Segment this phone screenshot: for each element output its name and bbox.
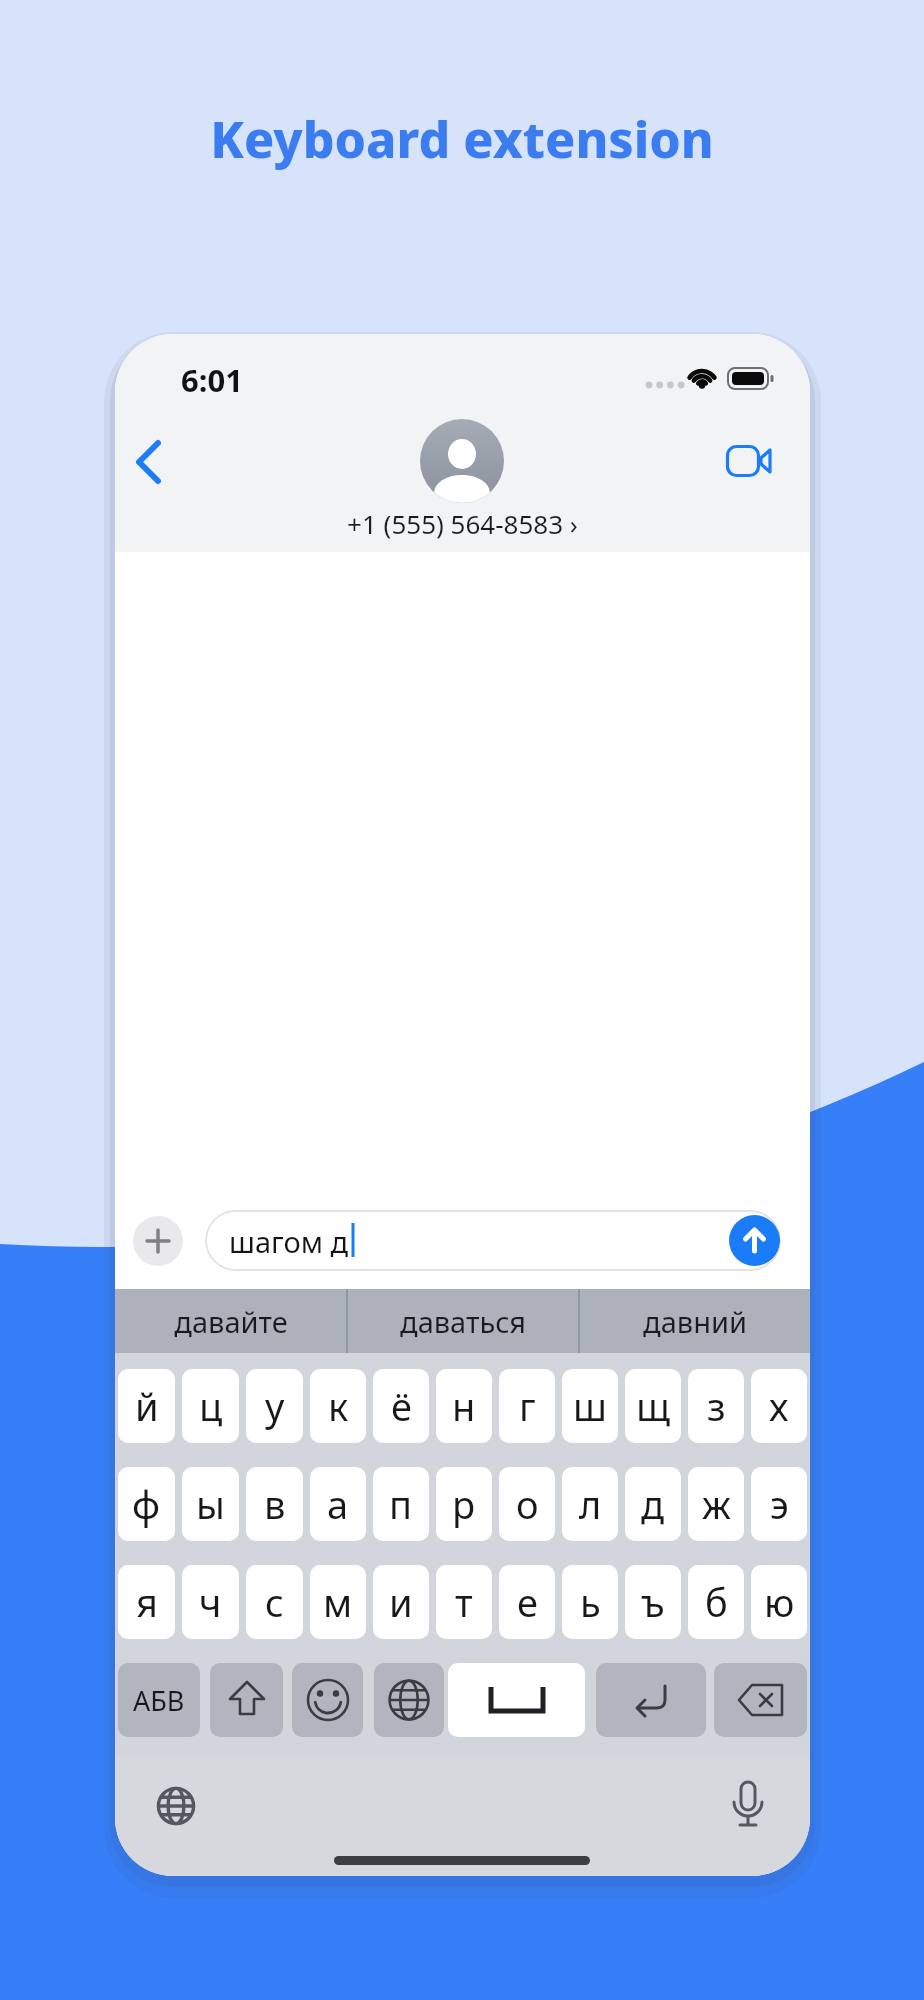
staticText: давайте	[174, 1302, 288, 1341]
staticText: в	[264, 1478, 286, 1530]
staticText: ю	[764, 1576, 795, 1628]
button[interactable]	[210, 1663, 283, 1737]
button[interactable]	[133, 439, 167, 485]
button[interactable]: ш	[562, 1369, 618, 1443]
button[interactable]: з	[688, 1369, 744, 1443]
button[interactable]	[726, 445, 776, 479]
button[interactable]	[596, 1663, 706, 1737]
staticText: ё	[391, 1380, 412, 1432]
button[interactable]	[374, 1663, 444, 1737]
button[interactable]: г	[499, 1369, 555, 1443]
staticText: с	[265, 1576, 284, 1628]
staticText: даваться	[400, 1302, 526, 1341]
button[interactable]: давайте	[115, 1289, 346, 1353]
staticText: к	[328, 1380, 349, 1432]
staticText: д	[641, 1478, 665, 1530]
button[interactable]: о	[499, 1467, 555, 1541]
button[interactable]: д	[625, 1467, 681, 1541]
button[interactable]: к	[310, 1369, 366, 1443]
button[interactable]: т	[436, 1565, 492, 1639]
staticText: у	[265, 1380, 285, 1432]
button[interactable]: щ	[625, 1369, 681, 1443]
staticText: т	[455, 1576, 473, 1628]
staticText: ч	[199, 1576, 222, 1628]
staticText: а	[327, 1478, 349, 1530]
button[interactable]: у	[246, 1369, 303, 1443]
button[interactable]	[448, 1663, 585, 1737]
button[interactable]: н	[436, 1369, 492, 1443]
staticText: АБВ	[133, 1682, 185, 1719]
staticText: я	[136, 1576, 158, 1628]
button[interactable]: ы	[182, 1467, 239, 1541]
button[interactable]: ь	[562, 1565, 618, 1639]
button[interactable]: а	[310, 1467, 366, 1541]
staticText: ь	[580, 1576, 601, 1628]
staticText: ы	[196, 1478, 225, 1530]
button[interactable]: с	[246, 1565, 303, 1639]
staticText: шагом д	[229, 1222, 349, 1261]
button[interactable]: ъ	[625, 1565, 681, 1639]
staticText: ц	[199, 1380, 223, 1432]
staticText: давний	[643, 1302, 747, 1341]
staticText: г	[519, 1380, 536, 1432]
button[interactable]	[723, 1780, 773, 1840]
staticText: ф	[132, 1478, 161, 1530]
button[interactable]	[714, 1663, 807, 1737]
staticText: м	[323, 1576, 353, 1628]
staticText: й	[135, 1380, 159, 1432]
staticText: э	[770, 1478, 789, 1530]
button[interactable]	[133, 1216, 183, 1266]
button[interactable]: ц	[182, 1369, 239, 1443]
staticText: +1 (555) 564-8583 ›	[115, 506, 810, 541]
staticText: б	[705, 1576, 728, 1628]
staticText: х	[769, 1380, 789, 1432]
button[interactable]: в	[246, 1467, 303, 1541]
button[interactable]: ф	[118, 1467, 175, 1541]
staticText: н	[452, 1380, 476, 1432]
button[interactable]	[292, 1663, 363, 1737]
staticText: р	[452, 1478, 476, 1530]
staticText: щ	[636, 1380, 671, 1432]
button[interactable]: АБВ	[118, 1663, 200, 1737]
button[interactable]: м	[310, 1565, 366, 1639]
button[interactable]: х	[751, 1369, 807, 1443]
staticText: и	[389, 1576, 413, 1628]
button[interactable]: и	[373, 1565, 429, 1639]
button[interactable]: ю	[751, 1565, 807, 1639]
button[interactable]: п	[373, 1467, 429, 1541]
button[interactable]: ж	[688, 1467, 744, 1541]
button[interactable]: давний	[580, 1289, 810, 1353]
staticText: п	[389, 1478, 413, 1530]
button[interactable]: й	[118, 1369, 175, 1443]
button[interactable]: э	[751, 1467, 807, 1541]
button[interactable]: даваться	[348, 1289, 578, 1353]
staticText: ж	[702, 1478, 731, 1530]
button[interactable]: е	[499, 1565, 555, 1639]
button[interactable]: ё	[373, 1369, 429, 1443]
button[interactable]: я	[118, 1565, 175, 1639]
staticText: л	[579, 1478, 602, 1530]
button[interactable]: р	[436, 1467, 492, 1541]
button[interactable]: б	[688, 1565, 744, 1639]
button[interactable]	[729, 1215, 780, 1266]
staticText: Keyboard extension	[0, 105, 924, 173]
staticText: 6:01	[181, 359, 243, 401]
staticText: ш	[573, 1380, 607, 1432]
staticText: е	[517, 1576, 538, 1628]
button[interactable]: шагом д	[205, 1210, 781, 1271]
staticText: ъ	[641, 1576, 665, 1628]
staticText: з	[707, 1380, 726, 1432]
button[interactable]: л	[562, 1467, 618, 1541]
button[interactable]: ч	[182, 1565, 239, 1639]
staticText: о	[516, 1478, 539, 1530]
